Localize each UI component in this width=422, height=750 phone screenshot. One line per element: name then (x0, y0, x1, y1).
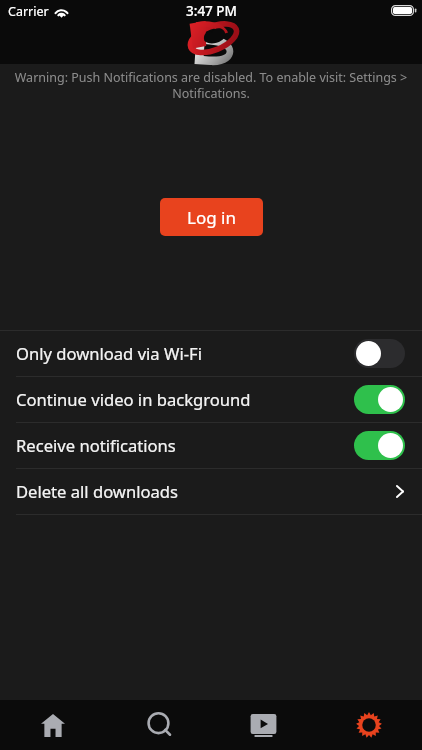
staticText: Only download via Wi-Fi (16, 342, 202, 365)
button[interactable]: Delete all downloads (0, 469, 422, 514)
staticText: Warning: Push Notifications are disabled… (14, 69, 408, 101)
staticText: Delete all downloads (16, 480, 178, 503)
staticText: 3:47 PM (186, 2, 237, 20)
button[interactable]: Only download via Wi-Fi: off (354, 339, 405, 368)
staticText: Receive notifications (16, 434, 176, 457)
button[interactable]: Home (0, 700, 105, 750)
button[interactable]: Settings (316, 700, 422, 750)
button[interactable]: Search (105, 700, 210, 750)
staticText: Continue video in background (16, 388, 251, 411)
button[interactable]: Receive notifications: on (354, 431, 405, 460)
button[interactable]: Continue video in background: on (354, 385, 405, 414)
staticText: Carrier (8, 3, 49, 20)
staticText: Log in (187, 206, 236, 229)
button[interactable]: Receive notifications (0, 423, 422, 468)
button[interactable]: Log in (160, 198, 263, 236)
button[interactable]: Continue video in background (0, 377, 422, 422)
button[interactable]: Only download via Wi-Fi (0, 331, 422, 376)
button[interactable]: Videos (210, 700, 316, 750)
